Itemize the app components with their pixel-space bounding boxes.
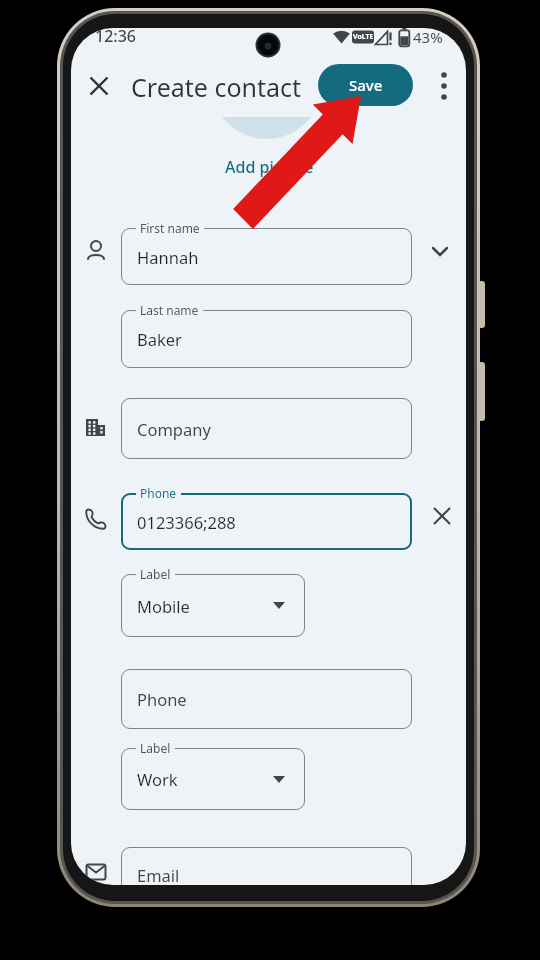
button[interactable]: Hannah	[121, 228, 412, 285]
staticText: Last name	[140, 302, 199, 318]
staticText: Phone	[140, 485, 177, 501]
staticText: VoLTE	[353, 32, 374, 42]
staticText: Hannah	[137, 246, 199, 268]
button[interactable]: Baker	[121, 310, 412, 368]
button[interactable]: Mobile	[121, 574, 305, 637]
button[interactable]	[432, 74, 456, 98]
staticText: 0123366;288	[137, 511, 236, 533]
button[interactable]: Add picture	[224, 156, 314, 178]
staticText: Email	[137, 864, 180, 885]
button[interactable]: Email	[121, 847, 412, 885]
staticText: 43%	[413, 28, 443, 47]
staticText: Create contact	[131, 70, 302, 104]
staticText: 12:36	[95, 28, 136, 47]
staticText: Label	[140, 566, 171, 582]
staticText: Baker	[137, 328, 182, 350]
button[interactable]: Work	[121, 748, 305, 810]
staticText: Save	[349, 75, 383, 95]
button[interactable]	[431, 505, 453, 527]
staticText: Phone	[137, 688, 187, 710]
button[interactable]	[428, 239, 452, 263]
button[interactable]: 0123366;288	[121, 493, 412, 550]
staticText: Add picture	[225, 156, 314, 178]
button[interactable]: Phone	[121, 669, 412, 729]
staticText: First name	[140, 220, 200, 236]
staticText: Work	[137, 768, 178, 790]
button[interactable]: Company	[121, 398, 412, 459]
button[interactable]: Save	[318, 64, 413, 106]
button[interactable]	[88, 75, 110, 97]
staticText: Label	[140, 740, 171, 756]
staticText: Company	[137, 418, 211, 440]
staticText: Mobile	[137, 595, 190, 617]
